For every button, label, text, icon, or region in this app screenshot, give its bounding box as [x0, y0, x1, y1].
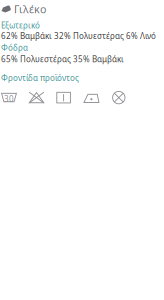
staticText: 62% Βαμβάκι 32% Πολυεστέρας 6% Λινό — [1, 31, 156, 41]
staticText: Εξωτερικό — [1, 20, 40, 31]
staticText: 30 — [4, 94, 14, 104]
staticText: Φόδρα — [1, 42, 28, 53]
staticText: Γιλέκο — [14, 2, 46, 16]
staticText: 65% Πολυεστέρας 35% Βαμβάκι — [1, 54, 124, 64]
staticText: Φροντίδα προϊόντος — [1, 72, 79, 83]
